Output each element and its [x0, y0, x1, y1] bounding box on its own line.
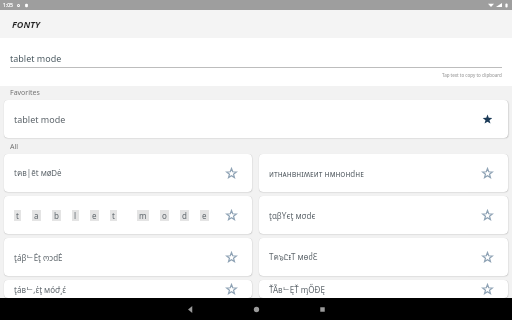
button[interactable]: t	[4, 196, 252, 234]
staticText: t	[16, 210, 19, 221]
button[interactable]: tablet mode	[10, 52, 502, 68]
staticText: d	[182, 210, 187, 221]
button[interactable]: Recent apps	[311, 298, 333, 320]
button[interactable]: Favorite	[220, 280, 242, 298]
staticText: tablet mode	[10, 52, 62, 64]
staticText: a	[34, 210, 39, 221]
button[interactable]: Favorite	[476, 246, 498, 268]
button[interactable]: Favorite	[476, 280, 498, 298]
button[interactable]: ţαβϒєţ мσdє	[259, 196, 508, 234]
staticText: FONTY	[12, 18, 41, 30]
staticText: 1:05	[3, 2, 13, 9]
staticText: ŤÃвᄂĘŤ ᶆŐĐĘ	[269, 284, 325, 295]
staticText: ţáβᄂĖţ ოɔdĖ	[14, 252, 63, 263]
button[interactable]: Favorite	[476, 162, 498, 184]
button[interactable]: Home	[245, 298, 267, 320]
button[interactable]: Favorite	[220, 162, 242, 184]
button[interactable]: Unfavorite	[476, 108, 498, 130]
button[interactable]: ţáβᄂĖţ ოɔdĖ	[4, 238, 252, 276]
staticText: m	[139, 210, 147, 221]
staticText: e	[202, 210, 207, 221]
staticText: Tap text to copy to clipboard	[442, 72, 502, 78]
button[interactable]: tคв|ēt мøᎠė	[4, 154, 252, 192]
staticText: b	[54, 210, 59, 221]
button[interactable]: Tค๖ᏝᵻT мѳძƐ	[259, 238, 508, 276]
staticText: Tค๖ᏝᵻT мѳძƐ	[269, 251, 318, 264]
staticText: All	[10, 142, 19, 152]
staticText: l	[74, 210, 77, 221]
staticText: ţαβϒєţ мσdє	[269, 210, 316, 221]
staticText: ᴎᴛнᴀнʙнɪʍᴇᴎᴛ ʜᴍнᴏнԁнᴇ	[269, 168, 364, 179]
button[interactable]: ţáвᄂ,ἐţ мόժ¸έ	[4, 280, 252, 298]
staticText: Favorites	[10, 88, 40, 98]
button[interactable]: Favorite	[476, 204, 498, 226]
button[interactable]: Favorite	[220, 204, 242, 226]
staticText: t	[112, 210, 115, 221]
staticText: ţáвᄂ,ἐţ мόժ¸έ	[14, 284, 66, 295]
button[interactable]: tablet mode	[4, 100, 508, 138]
staticText: tคв|ēt мøᎠė	[14, 167, 62, 180]
button[interactable]: ŤÃвᄂĘŤ ᶆŐĐĘ	[259, 280, 508, 298]
staticText: o	[162, 210, 167, 221]
staticText: tablet mode	[14, 113, 66, 125]
button[interactable]: Favorite	[220, 246, 242, 268]
button[interactable]: ᴎᴛнᴀнʙнɪʍᴇᴎᴛ ʜᴍнᴏнԁнᴇ	[259, 154, 508, 192]
button[interactable]: Back	[179, 298, 201, 320]
staticText: e	[92, 210, 97, 221]
